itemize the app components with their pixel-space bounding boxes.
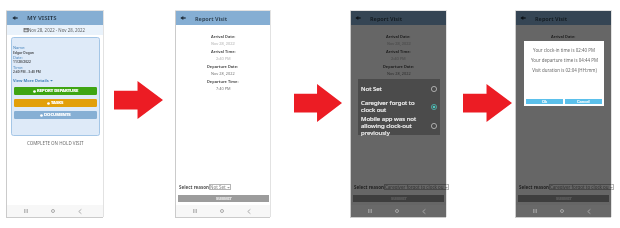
staticText: Select reason — [519, 184, 549, 190]
button[interactable]: Recent apps — [20, 205, 31, 217]
button[interactable]: Home — [391, 205, 402, 217]
staticText: Caregiver forgot to clock ou — [385, 184, 444, 190]
button[interactable]: Caregiver forgot to clock ou — [550, 184, 613, 190]
staticText: Not Set — [361, 85, 430, 93]
button[interactable]: Back — [516, 11, 530, 25]
button[interactable]: Back — [351, 11, 365, 25]
staticText: REPORT DEPARTURE — [37, 88, 79, 94]
button[interactable]: Back — [7, 11, 22, 25]
staticText: Arrival Date: — [551, 34, 576, 39]
button[interactable]: REPORT DEPARTURE — [14, 87, 97, 95]
staticText: 11/28/2022 — [13, 59, 31, 63]
staticText: 2:40 PM — [216, 56, 231, 61]
staticText: SUBMIT — [391, 196, 407, 202]
staticText: 2:40 PM - 3:40 PM — [13, 69, 41, 73]
staticText: Mobile app was not allowing clock-out pr… — [361, 115, 430, 136]
button[interactable]: Back — [583, 205, 594, 217]
button[interactable]: Home — [391, 205, 402, 217]
button[interactable]: Back — [74, 205, 85, 217]
staticText: Departure Date: — [207, 64, 239, 69]
staticText: Not Set — [210, 184, 226, 190]
staticText: Date: — [13, 55, 23, 60]
button[interactable]: Recent apps — [189, 205, 200, 217]
button[interactable]: Back — [516, 11, 611, 25]
button[interactable]: Recent apps — [529, 205, 540, 217]
button[interactable]: SUBMIT — [178, 195, 269, 202]
staticText: Arrival Time: — [386, 49, 411, 54]
staticText: DOCUMENTS — [44, 112, 71, 118]
staticText: Nov 28, 2022 - Nov 28, 2022 — [28, 27, 86, 33]
staticText: Nov 28, 2022 — [211, 71, 235, 76]
staticText: Cancel — [577, 99, 590, 104]
staticText: SUBMIT — [556, 196, 572, 202]
button[interactable]: View More Details — [13, 78, 53, 83]
staticText: Nov 28, 2022 — [387, 71, 411, 76]
staticText: Caregiver forgot to clock out — [361, 99, 430, 114]
button[interactable]: Name: — [11, 37, 100, 136]
staticText: Departure Time: — [207, 79, 239, 84]
button[interactable]: Ok — [526, 99, 563, 104]
staticText: Visit duration is 02:04 (HH:mm) — [532, 67, 597, 73]
button[interactable]: SUBMIT — [518, 195, 609, 202]
staticText: SUBMIT — [216, 196, 232, 202]
button[interactable]: Back — [351, 11, 446, 25]
button[interactable]: Recent apps — [364, 205, 375, 217]
button[interactable]: DOCUMENTS — [14, 111, 97, 119]
button[interactable]: Home — [216, 205, 227, 217]
button[interactable]: Nov 28, 2022 - Nov 28, 2022 — [7, 25, 103, 35]
staticText: Ok — [542, 99, 548, 104]
button[interactable]: Home — [47, 205, 58, 217]
staticText: View More Details — [13, 78, 49, 83]
staticText: Report Visit — [535, 15, 568, 22]
staticText: Your clock-in time is 02:40 PM — [533, 47, 595, 53]
staticText: Arrival Date: — [211, 34, 236, 39]
staticText: Departure Date: — [383, 64, 415, 69]
button[interactable]: Back — [418, 205, 429, 217]
button[interactable]: Mobile app was not allowing clock-out pr… — [361, 115, 437, 136]
staticText: Nov 28, 2022 — [211, 41, 235, 46]
staticText: Arrival Date: — [386, 34, 411, 39]
button[interactable]: Back — [176, 11, 270, 25]
staticText: Time: — [13, 65, 24, 70]
staticText: Your departure time is 04:44 PM — [531, 57, 598, 63]
staticText: Caregiver forgot to clock ou — [550, 184, 609, 190]
staticText: Edgar Dogan — [13, 50, 34, 54]
button[interactable]: Home — [556, 205, 567, 217]
button[interactable]: Back — [418, 205, 429, 217]
button[interactable]: Back — [176, 11, 190, 25]
button[interactable]: Not Set — [210, 184, 230, 190]
button[interactable]: Caregiver forgot to clock ou — [385, 184, 448, 190]
staticText: COMPLETE ON HOLD VISIT — [27, 140, 84, 146]
staticText: 7:40 PM — [216, 86, 231, 91]
staticText: Nov 28, 2022 — [387, 41, 411, 46]
staticText: TASKS — [51, 100, 64, 106]
staticText: Nov 28, 2022 — [552, 71, 576, 76]
staticText: Departure Date: — [548, 64, 580, 69]
button[interactable]: Cancel — [565, 99, 602, 104]
staticText: Arrival Time: — [211, 49, 236, 54]
staticText: MY VISITS — [27, 14, 57, 22]
button[interactable]: Recent apps — [364, 205, 375, 217]
button[interactable]: Back — [243, 205, 254, 217]
button[interactable]: Back — [583, 205, 594, 217]
staticText: 2:40 PM — [556, 56, 571, 61]
button[interactable]: Back — [7, 11, 103, 25]
button[interactable]: SUBMIT — [353, 195, 444, 202]
button[interactable]: Not Set — [361, 79, 437, 98]
staticText: Report Visit — [370, 15, 403, 22]
staticText: Select reason — [179, 184, 209, 190]
button[interactable]: Caregiver forgot to clock out — [361, 98, 437, 115]
button[interactable]: Recent apps — [529, 205, 540, 217]
button[interactable]: Home — [556, 205, 567, 217]
button[interactable]: TASKS — [14, 99, 97, 107]
staticText: Arrival Time: — [551, 49, 576, 54]
staticText: Report Visit — [195, 15, 228, 22]
staticText: 2:40 PM — [391, 56, 406, 61]
staticText: Name: — [13, 45, 26, 50]
staticText: Select reason — [354, 184, 384, 190]
